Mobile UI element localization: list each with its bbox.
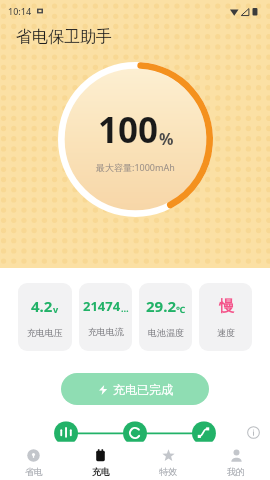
button[interactable]: 29.2 <box>139 283 192 351</box>
button[interactable]: 特效 <box>134 445 202 480</box>
staticText: 特效 <box>159 466 177 477</box>
staticText: 100 <box>98 106 159 154</box>
staticText: ℃ <box>176 303 186 315</box>
staticText: 10:14 <box>8 5 32 17</box>
staticText: 4.2 <box>31 296 53 316</box>
staticText: 慢 <box>219 297 234 316</box>
staticText: 我的 <box>227 466 245 477</box>
button[interactable]: 省电 <box>0 445 67 480</box>
button[interactable]: 充电 <box>67 445 134 480</box>
staticText: 充电电压 <box>27 327 63 338</box>
staticText: % <box>159 128 174 150</box>
button[interactable]: 我的 <box>202 445 270 480</box>
staticText: 充电 <box>92 466 110 477</box>
staticText: 充电电流 <box>88 326 124 337</box>
staticText: 21474 <box>83 297 121 315</box>
button[interactable]: 21474 <box>79 283 132 351</box>
button[interactable]: 慢 <box>199 283 252 351</box>
staticText: 省电 <box>25 466 43 477</box>
button[interactable]: 帮助 <box>247 426 260 439</box>
button[interactable]: 4.2 <box>18 283 72 351</box>
staticText: 最大容量:1000mAh <box>96 161 175 173</box>
staticText: 省电保卫助手 <box>16 27 112 47</box>
staticText: 29.2 <box>146 296 176 316</box>
staticText: … <box>121 302 129 314</box>
staticText: 充电已完成 <box>113 382 173 397</box>
staticText: 电池温度 <box>148 327 184 338</box>
button[interactable]: 充电已完成 <box>61 373 209 405</box>
staticText: v <box>53 303 59 315</box>
staticText: 速度 <box>217 327 235 338</box>
